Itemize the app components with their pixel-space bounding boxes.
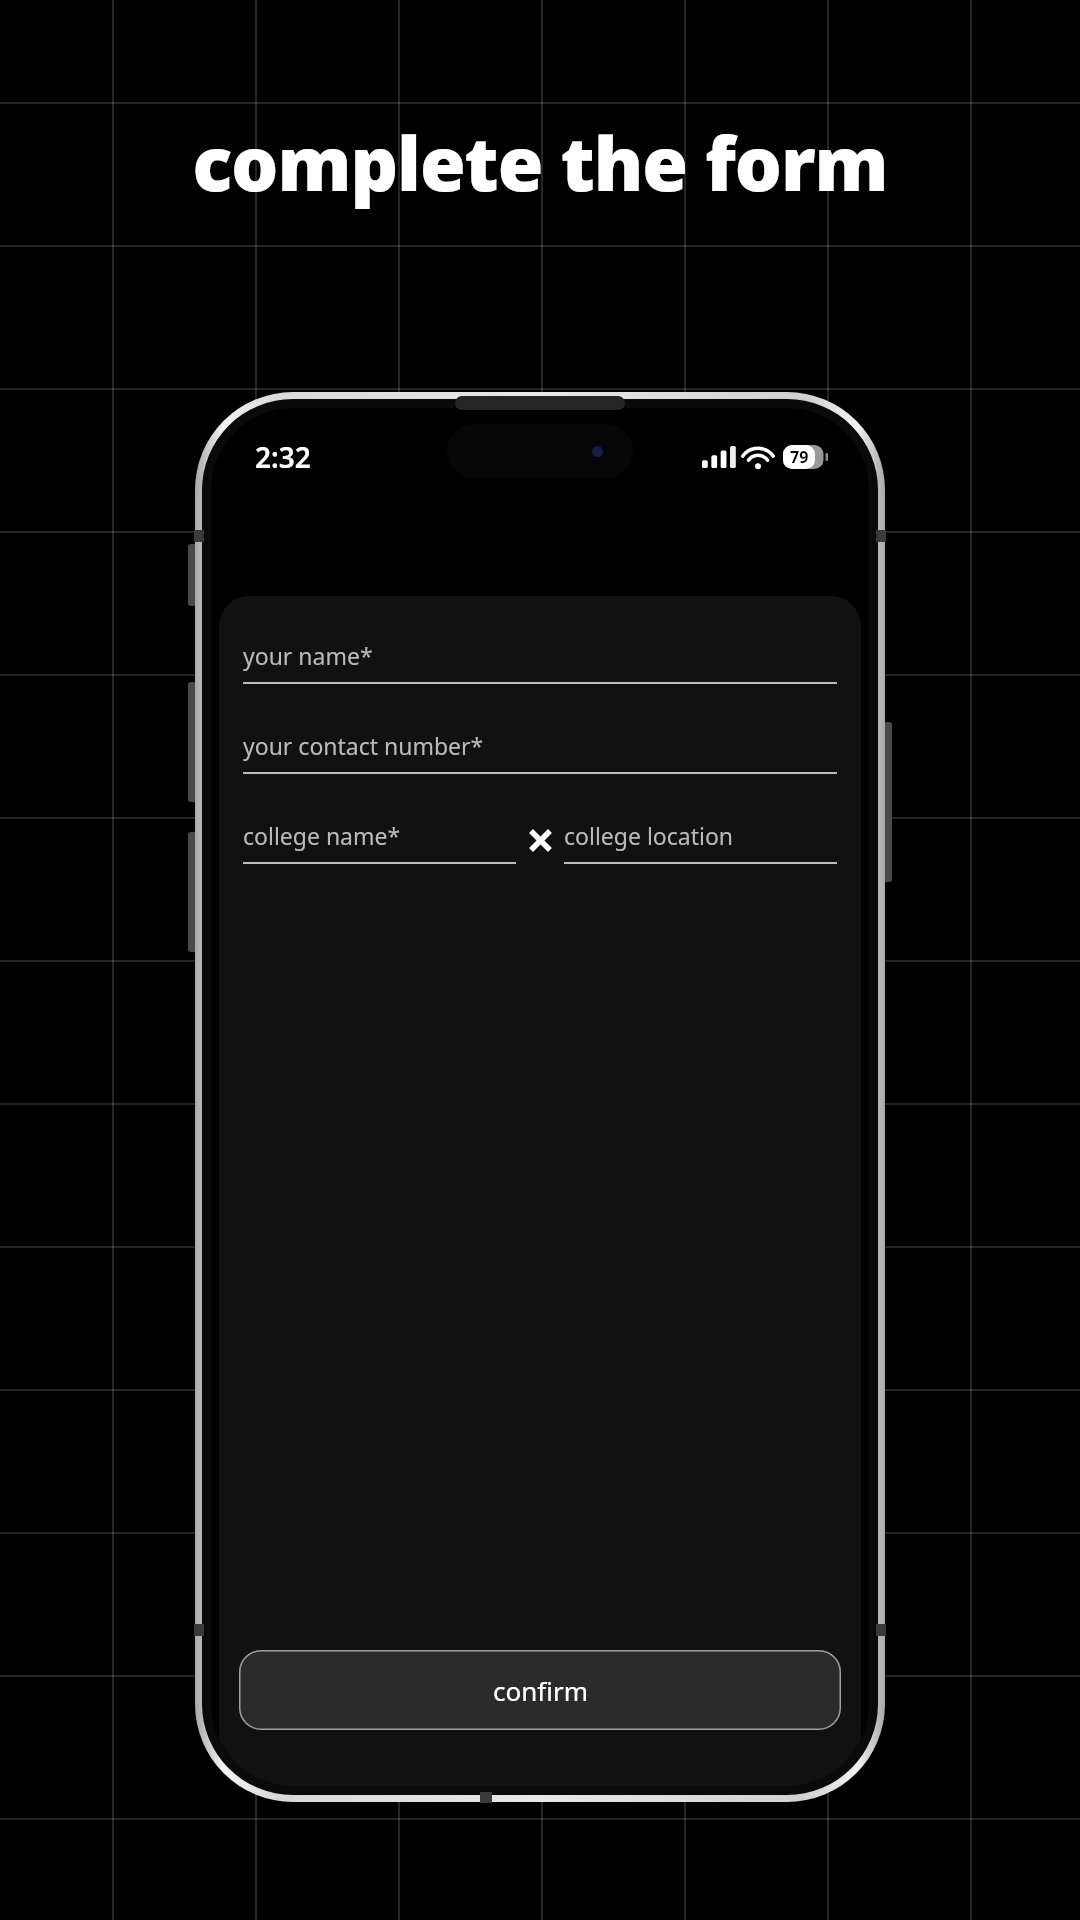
staticText: college location	[564, 820, 734, 851]
button[interactable]: confirm	[239, 1650, 841, 1730]
staticText: complete the form	[0, 112, 1080, 213]
button[interactable]: your name*	[243, 640, 837, 684]
staticText: 79	[790, 446, 809, 468]
staticText: your contact number*	[243, 730, 484, 761]
staticText: 2:32	[255, 438, 311, 476]
button[interactable]: college name*	[243, 820, 516, 864]
button[interactable]: Clear college	[520, 820, 560, 860]
staticText: confirm	[493, 1673, 588, 1708]
staticText: your name*	[243, 640, 373, 671]
button[interactable]: your contact number*	[243, 730, 837, 774]
button[interactable]: college location	[564, 820, 837, 864]
staticText: college name*	[243, 820, 401, 851]
